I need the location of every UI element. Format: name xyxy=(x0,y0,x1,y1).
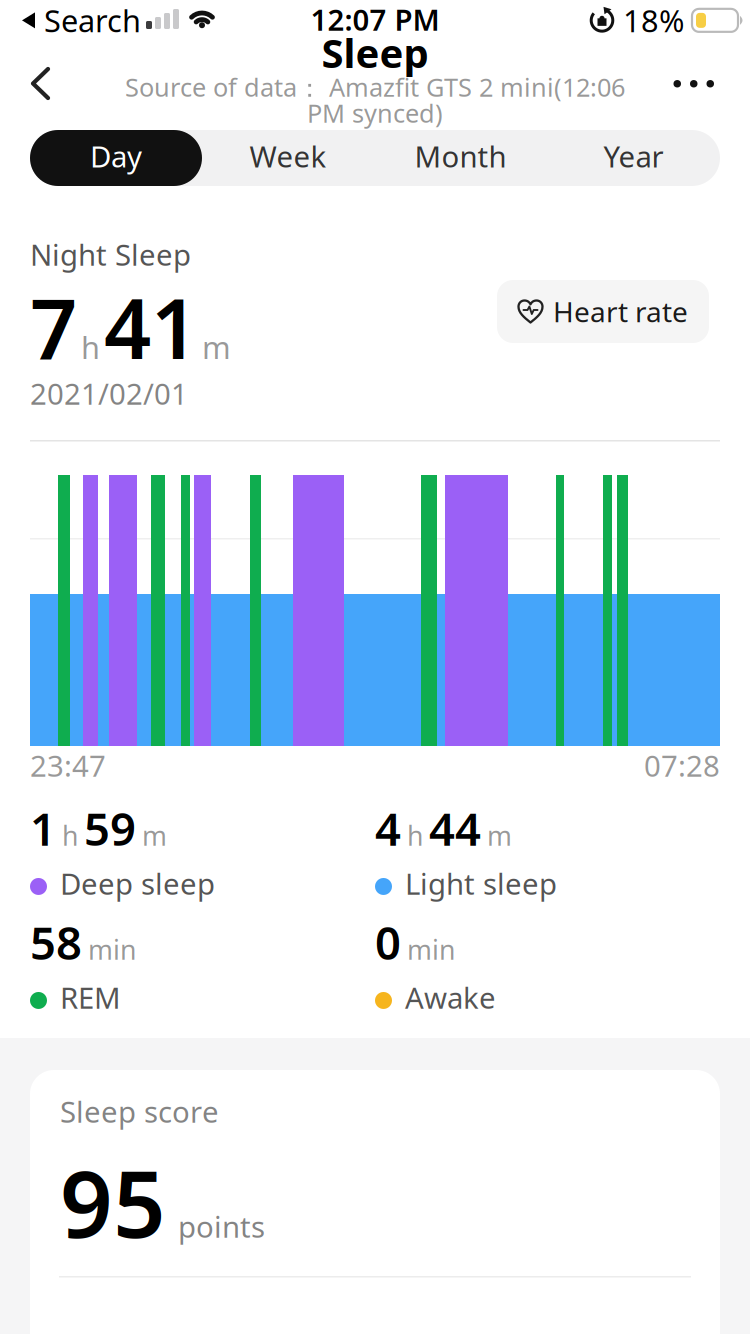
staticText: Night Sleep xyxy=(30,235,191,274)
staticText: PM synced) xyxy=(307,96,443,130)
staticText: min xyxy=(407,932,455,967)
staticText: m xyxy=(202,327,231,367)
staticText: 12:07 PM xyxy=(310,0,439,39)
staticText: Heart rate xyxy=(553,293,688,330)
staticText: 4 xyxy=(375,798,401,858)
staticText: Sleep xyxy=(321,26,428,79)
staticText: REM xyxy=(60,978,121,1017)
staticText: Source of data： Amazfit GTS 2 mini(12:06 xyxy=(125,70,625,104)
staticText: Awake xyxy=(405,978,496,1017)
staticText: 7 xyxy=(30,272,77,382)
staticText: Month xyxy=(414,136,506,175)
staticText: 59 xyxy=(84,798,136,858)
staticText: Year xyxy=(603,136,663,175)
button[interactable]: Week xyxy=(202,130,374,186)
button[interactable]: Year xyxy=(547,130,720,186)
staticText: Week xyxy=(249,136,326,175)
button[interactable]: Heart rate xyxy=(497,280,709,343)
staticText: 95 xyxy=(60,1141,166,1263)
button[interactable]: Day xyxy=(30,130,202,186)
staticText: 07:28 xyxy=(644,746,720,785)
staticText: Sleep score xyxy=(60,1092,219,1131)
staticText: 2021/02/01 xyxy=(30,374,188,413)
staticText: h xyxy=(81,327,100,367)
staticText: h xyxy=(62,818,78,853)
button[interactable]: Back xyxy=(31,67,51,100)
staticText: min xyxy=(88,932,136,967)
staticText: Search xyxy=(44,0,141,41)
staticText: 1 xyxy=(30,798,56,858)
staticText: Deep sleep xyxy=(60,864,215,903)
staticText: 44 xyxy=(429,798,481,858)
staticText: 0 xyxy=(375,912,401,972)
staticText: 18% xyxy=(623,0,684,41)
staticText: 58 xyxy=(30,912,82,972)
staticText: 23:47 xyxy=(30,746,106,785)
staticText: Day xyxy=(90,136,142,175)
staticText: m xyxy=(142,818,167,853)
staticText: 41 xyxy=(104,272,198,382)
staticText: m xyxy=(487,818,512,853)
staticText: h xyxy=(407,818,423,853)
button[interactable]: Back to Search xyxy=(22,0,141,41)
staticText: Light sleep xyxy=(405,864,557,903)
button[interactable]: More options xyxy=(673,80,714,87)
button[interactable]: Month xyxy=(374,130,547,186)
staticText: points xyxy=(178,1207,265,1246)
